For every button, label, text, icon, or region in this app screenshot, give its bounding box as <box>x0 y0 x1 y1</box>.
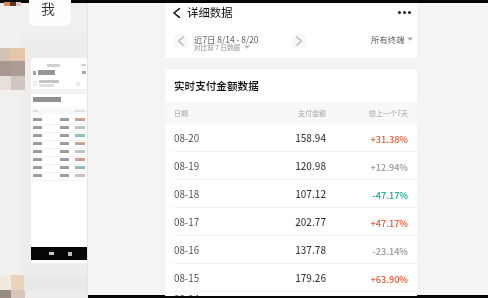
staticText: 107.12 <box>235 187 326 201</box>
button[interactable]: Back <box>168 4 185 21</box>
staticText: 08-16 <box>174 243 200 257</box>
staticText: 近7日 8/14 - 8/20 <box>194 33 259 45</box>
staticText: 对比前 7 日数据 <box>194 42 241 52</box>
staticText: +47.17% <box>325 216 408 229</box>
staticText: 179.26 <box>235 271 326 285</box>
staticText: +31.38% <box>325 132 408 145</box>
staticText: 08-17 <box>174 215 200 229</box>
button[interactable]: 08-19 <box>165 152 417 180</box>
staticText: 08-20 <box>174 131 200 145</box>
button[interactable]: Next period <box>292 34 306 48</box>
staticText: 202.77 <box>235 215 326 229</box>
button[interactable]: More options <box>394 4 414 21</box>
staticText: +63.90% <box>325 272 408 285</box>
staticText: 08-19 <box>174 159 200 173</box>
staticText: 详细数据 <box>187 4 233 21</box>
staticText: 158.94 <box>235 131 326 145</box>
staticText: -23.14% <box>325 244 408 257</box>
staticText: 支付金额 <box>235 108 326 118</box>
button[interactable]: 08-16 <box>165 236 417 264</box>
staticText: +12.94% <box>325 160 408 173</box>
button[interactable]: 所有终端 <box>371 29 413 49</box>
staticText: 日期 <box>174 108 188 118</box>
staticText: 08-14 <box>174 292 200 296</box>
button[interactable]: 08-14 <box>165 292 417 296</box>
staticText: 我 <box>41 0 55 18</box>
staticText: 较上一个7天 <box>325 108 408 118</box>
button[interactable]: 08-18 <box>165 180 417 208</box>
staticText: 实时支付金额数据 <box>174 78 259 93</box>
staticText: 08-18 <box>174 187 200 201</box>
button[interactable]: 08-17 <box>165 208 417 236</box>
staticText: 所有终端 <box>371 33 405 45</box>
staticText: 08-15 <box>174 271 200 285</box>
button[interactable]: Previous period <box>174 34 188 48</box>
staticText: 120.98 <box>235 159 326 173</box>
staticText: 137.78 <box>235 243 326 257</box>
staticText: -47.17% <box>325 188 408 201</box>
button[interactable]: 08-15 <box>165 264 417 292</box>
button[interactable]: 08-20 <box>165 124 417 152</box>
